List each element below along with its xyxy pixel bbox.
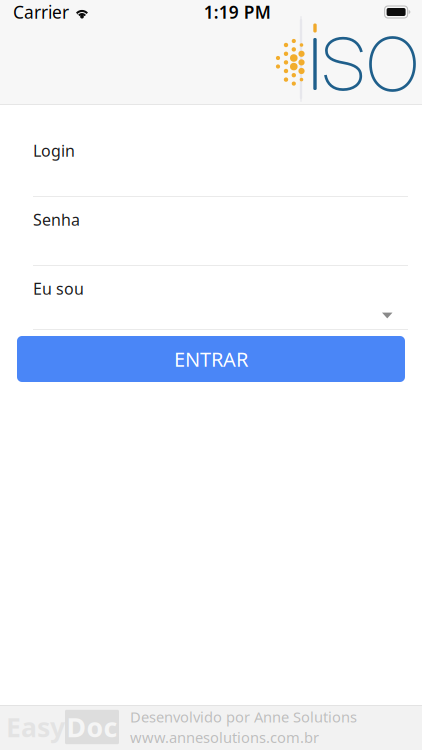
staticText: Carrier — [13, 0, 69, 23]
staticText: Desenvolvido por Anne Solutions — [130, 707, 357, 726]
button[interactable]: Login — [33, 105, 408, 197]
staticText: Doc — [66, 709, 117, 745]
button[interactable]: ENTRAR — [17, 336, 405, 382]
staticText: 1:19 PM — [204, 0, 271, 23]
button[interactable]: Eu sou — [33, 266, 408, 330]
button[interactable]: Senha — [33, 197, 408, 266]
staticText: Eu sou — [33, 278, 84, 299]
staticText: www.annesolutions.com.br — [130, 727, 319, 747]
staticText: Senha — [33, 209, 80, 230]
staticText: Login — [33, 140, 75, 161]
staticText: Easy — [6, 709, 65, 745]
staticText: ENTRAR — [174, 346, 248, 372]
